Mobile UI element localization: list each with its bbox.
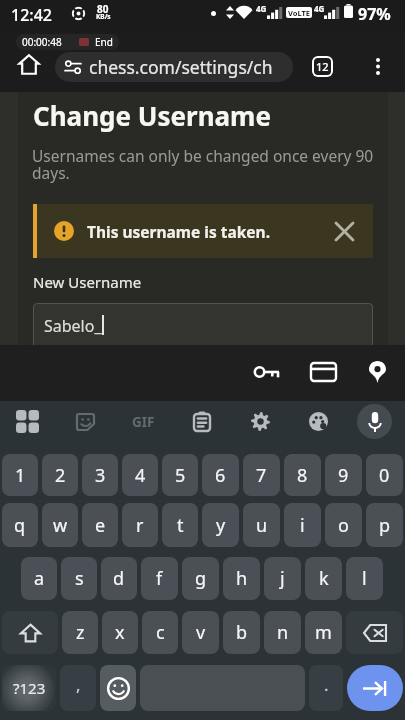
staticText: j — [280, 566, 285, 591]
staticText: 80 — [97, 2, 109, 16]
staticText: o — [338, 513, 349, 538]
button[interactable]: 4 — [122, 454, 158, 496]
button[interactable]: c — [142, 611, 178, 654]
button[interactable]: j — [264, 557, 301, 600]
button[interactable]: n — [264, 611, 301, 654]
button[interactable]: u — [243, 503, 280, 547]
button[interactable]: Payment methods — [305, 354, 341, 390]
staticText: h — [236, 566, 248, 591]
staticText: e — [95, 513, 106, 538]
staticText: 2 — [55, 463, 66, 488]
staticText: Change Username — [33, 98, 271, 133]
button[interactable]: More options — [363, 51, 393, 81]
button[interactable]: Emoji — [100, 665, 136, 711]
button[interactable]: Passwords — [249, 354, 285, 390]
button[interactable]: s — [61, 557, 97, 600]
staticText: l — [362, 566, 367, 591]
button[interactable]: 6 — [202, 454, 239, 496]
button[interactable]: p — [366, 503, 403, 547]
button[interactable]: b — [223, 611, 260, 654]
staticText: KB/s — [96, 12, 111, 21]
button[interactable]: Backspace — [346, 611, 403, 654]
button[interactable]: m — [305, 611, 342, 654]
button[interactable]: g — [182, 557, 219, 600]
staticText: d — [113, 566, 125, 591]
button[interactable]: k — [305, 557, 342, 600]
button[interactable]: . — [309, 665, 343, 711]
button[interactable]: h — [223, 557, 260, 600]
staticText: VoLTE — [288, 8, 310, 18]
button[interactable]: ?123 — [2, 665, 56, 711]
button[interactable]: y — [202, 503, 239, 547]
staticText: New Username — [33, 272, 142, 292]
button[interactable]: x — [102, 611, 138, 654]
staticText: 6 — [215, 463, 226, 488]
button[interactable]: 3 — [82, 454, 118, 496]
staticText: 1 — [15, 463, 26, 488]
staticText: chess.com/settings/ch — [89, 55, 273, 79]
staticText: u — [256, 513, 268, 538]
button[interactable]: 7 — [243, 454, 280, 496]
staticText: ?123 — [13, 678, 46, 698]
button[interactable]: 8 — [284, 454, 321, 496]
staticText: 3 — [95, 463, 106, 488]
button[interactable]: Apps — [10, 404, 45, 439]
button[interactable]: Themes — [301, 404, 336, 439]
staticText: t — [177, 513, 184, 538]
button[interactable]: Tabs — [307, 51, 337, 81]
button[interactable]: 0 — [366, 454, 403, 496]
staticText: 4 — [135, 463, 146, 488]
staticText: , — [76, 673, 81, 696]
staticText: s — [75, 566, 84, 591]
button[interactable]: r — [122, 503, 158, 547]
button[interactable]: w — [42, 503, 78, 547]
staticText: w — [53, 513, 68, 538]
staticText: 00:00:48 — [22, 35, 62, 49]
button[interactable]: Shift — [2, 611, 58, 654]
button[interactable]: GIF — [126, 404, 161, 439]
staticText: 12 — [316, 59, 329, 74]
button[interactable]: l — [346, 557, 383, 600]
button[interactable]: z — [62, 611, 98, 654]
button[interactable]: Sabelo_ — [33, 303, 373, 349]
staticText: g — [195, 566, 207, 591]
staticText: 0 — [379, 463, 390, 488]
button[interactable]: 1 — [2, 454, 38, 496]
staticText: 12:42 — [11, 4, 52, 26]
button[interactable]: 9 — [325, 454, 362, 496]
button[interactable]: 5 — [162, 454, 198, 496]
staticText: c — [156, 620, 165, 645]
button[interactable]: Addresses — [359, 354, 395, 390]
button[interactable]: Enter — [347, 665, 403, 711]
button[interactable]: Stickers — [68, 404, 103, 439]
staticText: 8 — [297, 463, 308, 488]
button[interactable]: a — [21, 557, 57, 600]
staticText: Usernames can only be changed once every… — [32, 145, 374, 184]
button[interactable]: , — [60, 665, 96, 711]
button[interactable]: Dismiss — [328, 215, 360, 247]
button[interactable]: Settings — [243, 404, 278, 439]
staticText: 4G — [256, 3, 267, 14]
button[interactable]: Voice input — [357, 404, 392, 439]
button[interactable]: o — [325, 503, 362, 547]
button[interactable]: t — [162, 503, 198, 547]
staticText: p — [379, 513, 391, 538]
button[interactable]: i — [284, 503, 321, 547]
staticText: . — [324, 673, 329, 696]
button[interactable]: d — [101, 557, 137, 600]
button[interactable]: f — [141, 557, 178, 600]
button[interactable]: Clipboard — [184, 404, 219, 439]
button[interactable]: 2 — [42, 454, 78, 496]
staticText: k — [319, 566, 329, 591]
staticText: 97% — [358, 3, 391, 25]
button[interactable]: v — [182, 611, 219, 654]
staticText: 9 — [338, 463, 349, 488]
staticText: GIF — [132, 413, 155, 431]
button[interactable]: chess.com/settings/ch — [55, 52, 293, 82]
button[interactable]: q — [2, 503, 38, 547]
staticText: y — [216, 513, 226, 538]
button[interactable]: Home — [14, 49, 44, 79]
staticText: z — [76, 620, 85, 645]
button[interactable]: e — [82, 503, 118, 547]
